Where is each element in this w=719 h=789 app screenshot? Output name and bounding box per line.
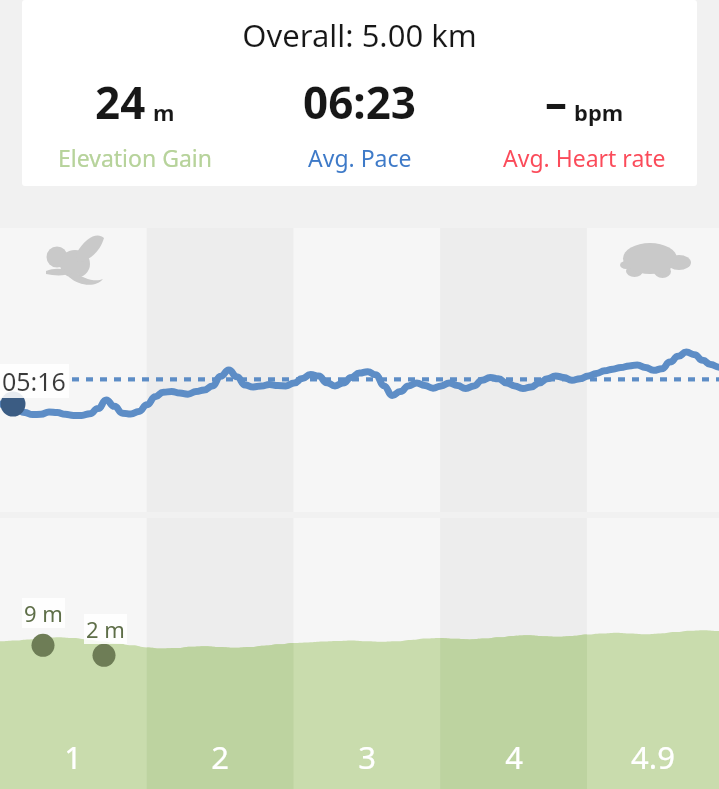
- button[interactable]: Elevation chart: [0, 518, 719, 789]
- staticText: bpm: [574, 97, 624, 127]
- staticText: 4.9: [631, 736, 675, 778]
- staticText: Avg. Heart rate: [503, 142, 666, 173]
- button[interactable]: 06:23: [247, 72, 472, 173]
- staticText: 06:23: [303, 72, 417, 132]
- button[interactable]: 24: [22, 72, 247, 173]
- staticText: 3: [358, 736, 376, 778]
- button[interactable]: Overall: 5.00 km: [22, 0, 697, 186]
- staticText: 2: [211, 736, 229, 778]
- button[interactable]: Pace chart: [0, 228, 719, 512]
- staticText: Overall: 5.00 km: [22, 14, 697, 56]
- staticText: –: [545, 72, 567, 132]
- staticText: 4: [505, 736, 523, 778]
- staticText: Elevation Gain: [58, 142, 212, 173]
- button[interactable]: –: [472, 72, 697, 173]
- staticText: 9 m: [24, 598, 63, 628]
- staticText: 1: [64, 736, 82, 778]
- staticText: Avg. Pace: [308, 142, 412, 173]
- staticText: 05:16: [2, 364, 66, 398]
- staticText: 24: [95, 72, 146, 132]
- staticText: m: [153, 97, 175, 127]
- staticText: 2 m: [86, 614, 125, 644]
